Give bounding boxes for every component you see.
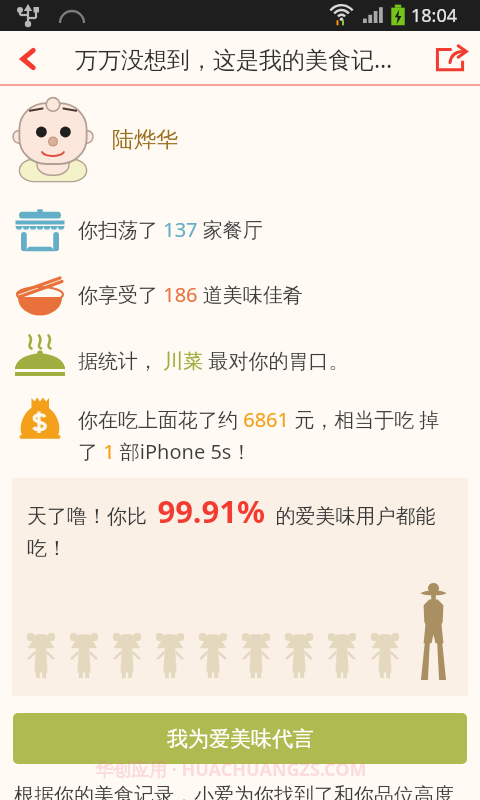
staticText: 万万没想到，这是我的美食记… xyxy=(75,43,393,74)
staticText: 天了噜！你比 99.91% 的爱美味用户都能吃！ xyxy=(27,490,457,561)
button[interactable]: 陆烨华 xyxy=(0,96,480,184)
staticText: 你在吃上面花了约 6861 元，相当于吃 掉了 1 部iPhone 5s！ xyxy=(78,406,446,465)
staticText: 陆烨华 xyxy=(112,126,178,154)
staticText: 18:04 xyxy=(411,3,458,28)
staticText: 根据你的美食记录，小爱为你找到了和你品位高度 xyxy=(14,783,454,800)
staticText: 据统计， 川菜 最对你的胃口。 xyxy=(78,347,446,374)
button[interactable]: Share xyxy=(420,31,480,86)
staticText: 华创应用 · HUACHUANGZS.COM xyxy=(95,757,367,782)
staticText: 我为爱美味代言 xyxy=(167,726,314,752)
staticText: 你享受了 186 道美味佳肴 xyxy=(78,281,446,308)
staticText: 你扫荡了 137 家餐厅 xyxy=(78,216,446,243)
button[interactable]: 我为爱美味代言 xyxy=(13,713,467,764)
button[interactable]: Back xyxy=(0,31,56,86)
